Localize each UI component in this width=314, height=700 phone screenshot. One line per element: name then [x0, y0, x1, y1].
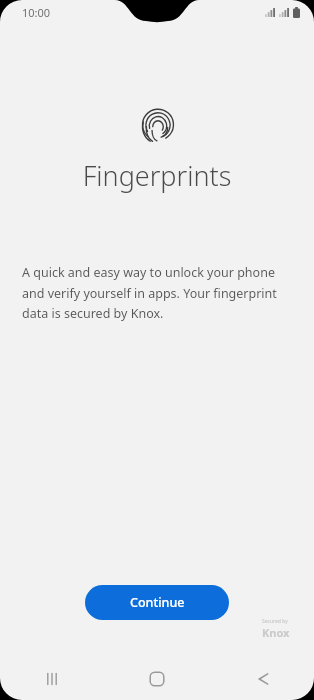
button[interactable]: Home: [104, 658, 209, 700]
button[interactable]: Recent apps: [0, 658, 104, 700]
staticText: Fingerprints: [0, 157, 314, 194]
button[interactable]: Back: [209, 658, 314, 700]
staticText: 10:00: [22, 5, 51, 20]
staticText: Knox: [262, 625, 290, 640]
staticText: Secured by: [262, 618, 288, 625]
button[interactable]: Continue: [85, 585, 229, 620]
staticText: A quick and easy way to unlock your phon…: [22, 264, 296, 321]
staticText: Continue: [130, 594, 185, 611]
